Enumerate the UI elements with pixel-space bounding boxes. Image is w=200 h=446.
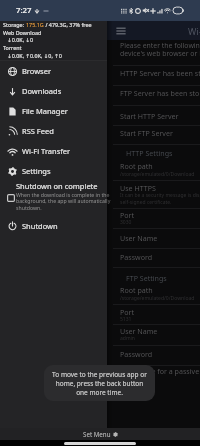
staticText: Shutdown bbox=[22, 221, 58, 231]
staticText: /storage/emulated/0/Download bbox=[120, 295, 195, 302]
staticText: ↓0.0K, ↓0 bbox=[3, 36, 34, 43]
staticText: Storage: bbox=[3, 21, 26, 28]
button[interactable]: RSS Feed bbox=[0, 121, 107, 141]
staticText: FTP Server has been stopped. bbox=[120, 88, 200, 98]
button[interactable]: Settings bbox=[0, 161, 107, 181]
staticText: Web Download bbox=[3, 29, 42, 36]
staticText: Password bbox=[120, 349, 153, 359]
button[interactable]: Shutdown on complete bbox=[0, 181, 107, 215]
staticText: / 479.3G, 37% free bbox=[44, 21, 92, 28]
button[interactable]: Set Menu bbox=[0, 428, 200, 440]
staticText: Port bbox=[120, 307, 135, 317]
button[interactable]: Open navigation drawer bbox=[114, 24, 128, 38]
staticText: File Manager bbox=[22, 106, 68, 116]
staticText: 7:27 bbox=[16, 5, 32, 16]
button[interactable]: Browser bbox=[0, 61, 107, 81]
staticText: When the download is complete in the bac… bbox=[16, 191, 111, 212]
staticText: To move to the previous app or home, pre… bbox=[50, 370, 149, 397]
staticText: 175.1G bbox=[26, 21, 44, 28]
staticText: Shutdown on complete bbox=[16, 181, 98, 191]
staticText: admin bbox=[120, 335, 135, 342]
staticText: Start HTTP Server bbox=[120, 111, 179, 121]
staticText: FTP Settings bbox=[126, 273, 167, 283]
staticText: ↓0.0K, ↑0.0K, ↓0, ↑0 bbox=[3, 52, 62, 59]
staticText: Use HTTPS bbox=[120, 183, 156, 193]
button[interactable]: Shutdown bbox=[0, 216, 107, 235]
staticText: /storage/emulated/0/Download bbox=[120, 171, 195, 178]
staticText: 5131 bbox=[120, 316, 132, 323]
staticText: Root path bbox=[120, 161, 153, 171]
staticText: User Name bbox=[120, 233, 158, 243]
staticText: Downloads bbox=[22, 86, 62, 96]
button[interactable]: Wi-Fi Transfer bbox=[0, 141, 107, 161]
staticText: Wi-Fi Transfer bbox=[188, 25, 200, 37]
staticText: Start FTP Server bbox=[120, 128, 173, 138]
staticText: HTTP Settings bbox=[126, 148, 173, 158]
staticText: Browser bbox=[22, 66, 52, 76]
staticText: Settings bbox=[22, 166, 51, 176]
staticText: Port range for a passive connection bbox=[120, 366, 200, 376]
staticText: Password bbox=[120, 252, 153, 262]
staticText: RSS Feed bbox=[22, 126, 54, 136]
staticText: Wi-Fi Transfer bbox=[22, 146, 71, 156]
staticText: Please enter the following address in th… bbox=[120, 41, 200, 58]
staticText: Set Menu bbox=[83, 430, 111, 438]
staticText: Torrent bbox=[3, 44, 22, 51]
staticText: Root path bbox=[120, 285, 153, 295]
staticText: HTTP Server has been stopped. bbox=[120, 68, 200, 78]
staticText: 3030 bbox=[120, 219, 132, 226]
button[interactable]: Downloads bbox=[0, 81, 107, 101]
staticText: User Name bbox=[120, 326, 158, 336]
button[interactable]: File Manager bbox=[0, 101, 107, 121]
staticText: Port bbox=[120, 210, 135, 220]
staticText: It can be a security message is displaye… bbox=[120, 192, 200, 206]
